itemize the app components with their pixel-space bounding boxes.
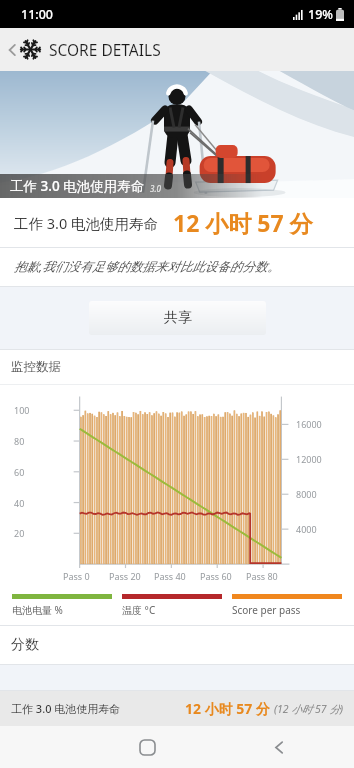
staticText: 12 小时 57 分: [185, 699, 270, 718]
staticText: 工作 3.0 电池使用寿命: [10, 177, 145, 195]
staticText: 温度 °C: [122, 603, 156, 617]
staticText: 3.0: [150, 183, 161, 194]
staticText: 40: [14, 497, 25, 509]
staticText: (12 小时 57 分): [274, 702, 343, 716]
staticText: 8000: [296, 488, 317, 500]
staticText: 11:00: [21, 6, 54, 23]
staticText: Pass 0: [63, 570, 90, 582]
staticText: 监控数据: [11, 359, 61, 375]
staticText: Pass 60: [200, 570, 232, 582]
staticText: Score per pass: [232, 603, 301, 617]
staticText: 抱歉,我们没有足够的数据来对比此设备的分数。: [14, 258, 280, 275]
staticText: 60: [14, 466, 25, 478]
staticText: Pass 80: [246, 570, 278, 582]
staticText: 工作 3.0 电池使用寿命: [11, 701, 121, 716]
staticText: 电池电量 %: [12, 603, 63, 617]
staticText: Pass 20: [109, 570, 141, 582]
staticText: Pass 40: [154, 570, 186, 582]
staticText: 工作 3.0 电池使用寿命: [14, 213, 159, 233]
staticText: 12000: [296, 453, 322, 465]
staticText: 20: [14, 527, 25, 539]
button[interactable]: 工作 3.0 电池使用寿命: [0, 691, 354, 726]
staticText: 19%: [308, 6, 333, 23]
staticText: 100: [14, 404, 30, 416]
staticText: 分数: [11, 636, 39, 654]
button[interactable]: Back to scores: [0, 28, 354, 71]
staticText: 4000: [296, 523, 317, 535]
staticText: 16000: [296, 418, 322, 430]
staticText: SCORE DETAILS: [49, 39, 161, 60]
button[interactable]: 共享: [89, 301, 266, 335]
staticText: 12 小时 57 分: [173, 207, 313, 238]
staticText: 80: [14, 435, 25, 447]
button[interactable]: Back: [257, 726, 301, 768]
button[interactable]: Home: [125, 726, 169, 768]
staticText: 共享: [164, 309, 192, 327]
